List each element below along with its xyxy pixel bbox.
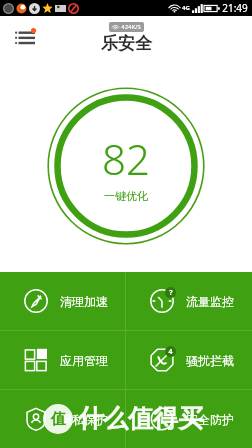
staticText: 424K/S xyxy=(121,23,141,31)
staticText: ? xyxy=(169,288,173,298)
staticText: 值 xyxy=(51,410,66,429)
staticText: 82 xyxy=(102,130,150,187)
button[interactable]: 应用管理 xyxy=(0,331,126,389)
staticText: 乐安全 xyxy=(101,33,152,54)
staticText: 什么值得买 xyxy=(78,403,203,434)
staticText: 一键优化 xyxy=(104,189,148,203)
button[interactable]: 清理加速 xyxy=(0,272,126,330)
button[interactable]: 安全防护 xyxy=(126,390,252,448)
staticText: 4 xyxy=(168,347,173,357)
staticText: 21:49 xyxy=(222,1,248,15)
staticText: 清理加速 xyxy=(60,294,108,309)
staticText: 隐私保护 xyxy=(60,412,108,427)
button[interactable]: Menu xyxy=(8,21,42,55)
staticText: 骚扰拦截 xyxy=(186,353,234,368)
staticText: 4G xyxy=(182,4,190,12)
button[interactable]: One key optimize xyxy=(47,87,205,245)
button[interactable]: 4 xyxy=(126,331,252,389)
staticText: 流量监控 xyxy=(186,294,234,309)
staticText: 应用管理 xyxy=(60,353,108,368)
staticText: 安全防护 xyxy=(186,412,234,427)
button[interactable]: 隐私保护 xyxy=(0,390,126,448)
button[interactable]: ? xyxy=(126,272,252,330)
